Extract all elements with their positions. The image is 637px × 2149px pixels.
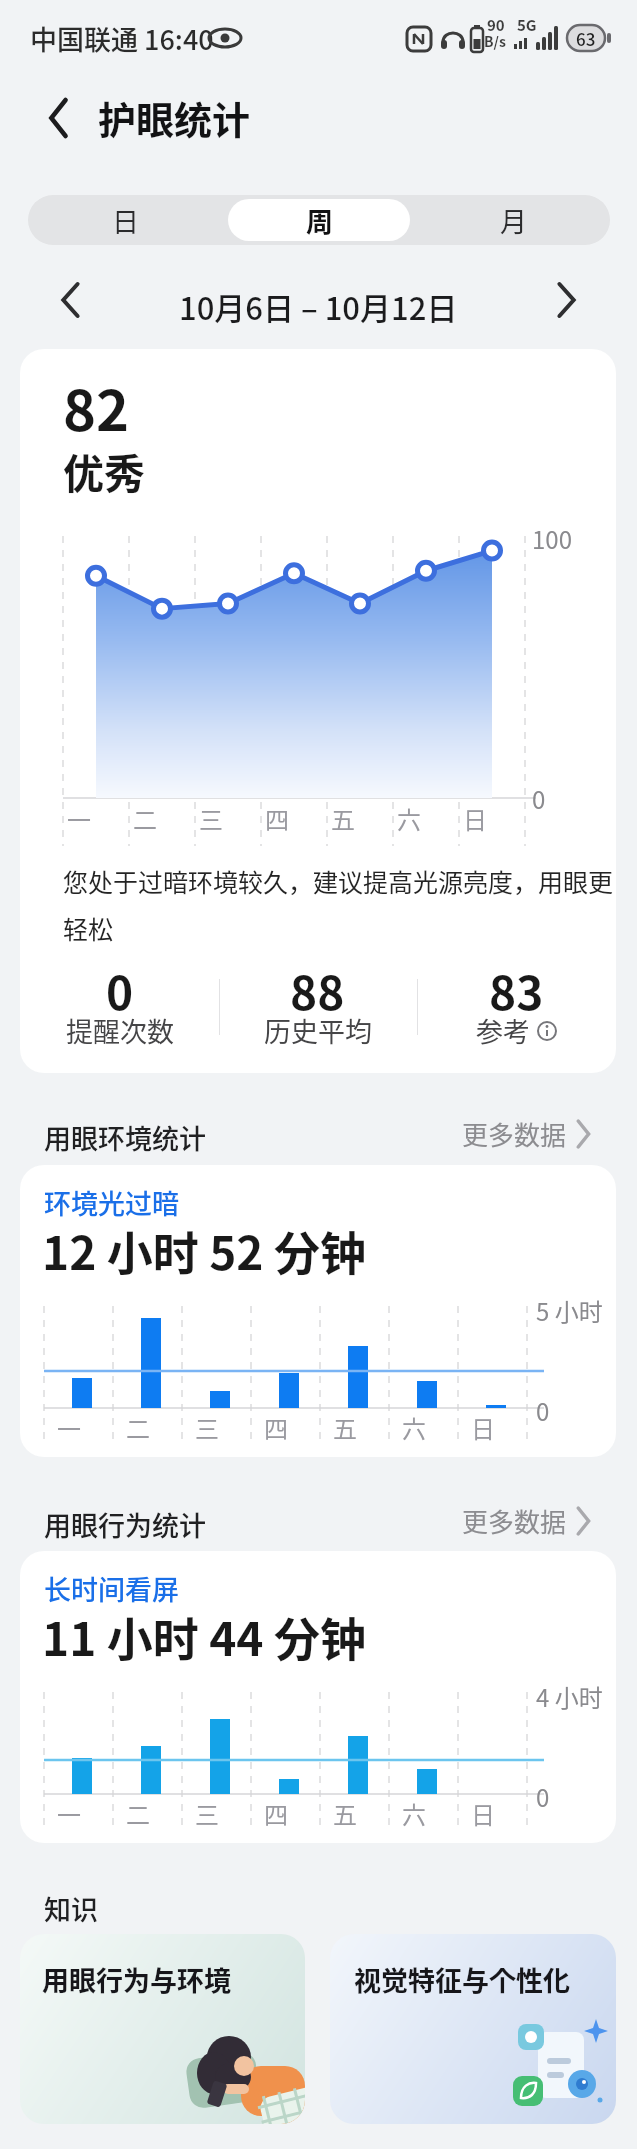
staticText: 知识 <box>44 1889 98 1928</box>
staticText: 一 <box>67 801 91 836</box>
staticText: 周 <box>306 201 333 240</box>
staticText: 0 <box>106 957 134 1024</box>
staticText: 更多数据 <box>462 1115 567 1153</box>
staticText: 二 <box>126 1410 150 1445</box>
staticText: 三 <box>195 1410 219 1445</box>
staticText: 12 小时 52 分钟 <box>42 1217 366 1284</box>
staticText: 三 <box>199 801 223 836</box>
staticText: 0 <box>536 1779 550 1814</box>
staticText: 中国联通 16:40 <box>30 19 214 58</box>
staticText: 参考 <box>476 1011 530 1050</box>
staticText: 长时间看屏 <box>44 1569 179 1608</box>
staticText: 日 <box>471 1796 495 1831</box>
staticText: 环境光过暗 <box>44 1183 179 1222</box>
staticText: 63 <box>576 26 596 51</box>
staticText: 100 <box>532 521 572 556</box>
button[interactable]: 月 <box>416 195 610 245</box>
button[interactable]: 更多数据 <box>462 1499 591 1543</box>
button[interactable]: 周 <box>222 195 416 245</box>
staticText: 更多数据 <box>462 1502 567 1540</box>
staticText: 历史平均 <box>264 1011 372 1050</box>
staticText: 优秀 <box>63 441 145 500</box>
staticText: 90 <box>487 14 505 36</box>
staticText: 三 <box>195 1796 219 1831</box>
staticText: 五 <box>333 1796 357 1831</box>
staticText: 您处于过暗环境较久，建议提高光源亮度，用眼更 轻松 <box>63 863 614 946</box>
staticText: 一 <box>57 1796 81 1831</box>
staticText: 4 小时 <box>536 1679 603 1714</box>
staticText: 一 <box>57 1410 81 1445</box>
button[interactable]: 日 <box>28 195 222 245</box>
staticText: 日 <box>463 801 487 836</box>
staticText: 日 <box>471 1410 495 1445</box>
staticText: 四 <box>264 1410 288 1445</box>
staticText: 10月6日 – 10月12日 <box>179 284 458 329</box>
staticText: 五 <box>331 801 355 836</box>
staticText: 提醒次数 <box>66 1011 174 1050</box>
staticText: 用眼环境统计 <box>44 1118 206 1157</box>
staticText: 五 <box>333 1410 357 1445</box>
staticText: 0 <box>536 1393 550 1428</box>
staticText: 六 <box>402 1796 426 1831</box>
staticText: 护眼统计 <box>98 90 251 145</box>
button[interactable] <box>50 278 94 322</box>
button[interactable] <box>545 278 589 322</box>
staticText: 视觉特征与个性化 <box>354 1960 570 1999</box>
staticText: 六 <box>402 1410 426 1445</box>
staticText: 日 <box>112 201 139 240</box>
staticText: 5 小时 <box>536 1293 603 1328</box>
staticText: 83 <box>489 957 544 1024</box>
button[interactable]: 视觉特征与个性化 <box>330 1934 616 2124</box>
staticText: 0 <box>532 781 546 816</box>
staticText: 四 <box>265 801 289 836</box>
button[interactable]: 更多数据 <box>462 1112 591 1156</box>
staticText: 82 <box>63 366 130 447</box>
staticText: 5G <box>517 14 537 36</box>
staticText: 二 <box>133 801 157 836</box>
staticText: 六 <box>397 801 421 836</box>
button[interactable] <box>40 96 84 140</box>
staticText: 四 <box>264 1796 288 1831</box>
staticText: 月 <box>500 201 527 240</box>
staticText: 用眼行为统计 <box>44 1505 206 1544</box>
staticText: 二 <box>126 1796 150 1831</box>
staticText: 88 <box>290 957 345 1024</box>
staticText: 11 小时 44 分钟 <box>42 1603 366 1670</box>
staticText: 用眼行为与环境 <box>42 1960 231 1999</box>
staticText: B/s <box>484 31 506 51</box>
button[interactable]: 用眼行为与环境 <box>20 1934 305 2124</box>
